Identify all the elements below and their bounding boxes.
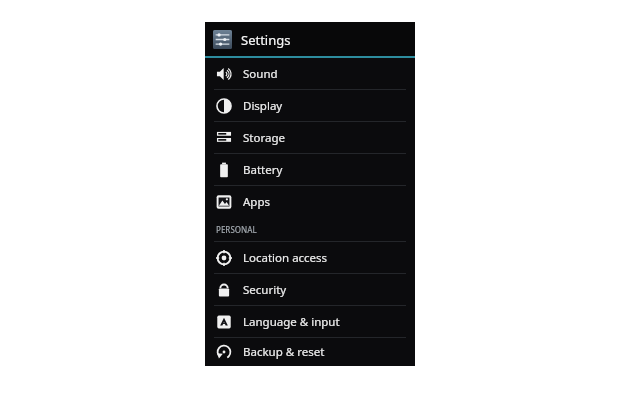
other: Backup and reset xyxy=(216,344,232,360)
other: Storage xyxy=(216,130,232,146)
other: Apps xyxy=(216,194,232,210)
other: Battery xyxy=(216,162,232,178)
button[interactable]: Settings xyxy=(205,22,415,56)
other: Display xyxy=(216,98,232,114)
other: Sound xyxy=(216,66,232,82)
button[interactable]: Storage xyxy=(205,122,415,153)
staticText: Settings xyxy=(241,31,291,49)
button[interactable]: Apps xyxy=(205,186,415,217)
staticText: Location access xyxy=(243,250,328,266)
other: Location access xyxy=(216,250,232,266)
button[interactable]: Backup and reset xyxy=(205,338,415,366)
staticText: Backup & reset xyxy=(243,344,325,360)
other: Language and input xyxy=(216,314,232,330)
staticText: Storage xyxy=(243,130,285,146)
button[interactable]: Security xyxy=(205,274,415,305)
button[interactable]: Location access xyxy=(205,242,415,273)
other: Settings xyxy=(213,30,232,49)
staticText: Battery xyxy=(243,162,283,178)
button[interactable]: Display xyxy=(205,90,415,121)
staticText: Apps xyxy=(243,194,271,210)
other: Security xyxy=(216,282,232,298)
staticText: Display xyxy=(243,98,283,114)
staticText: Security xyxy=(243,282,287,298)
button[interactable]: Sound xyxy=(205,58,415,89)
staticText: Language & input xyxy=(243,314,340,330)
staticText: PERSONAL xyxy=(216,224,257,235)
button[interactable]: Battery xyxy=(205,154,415,185)
button[interactable]: Language and input xyxy=(205,306,415,337)
staticText: Sound xyxy=(243,66,278,82)
